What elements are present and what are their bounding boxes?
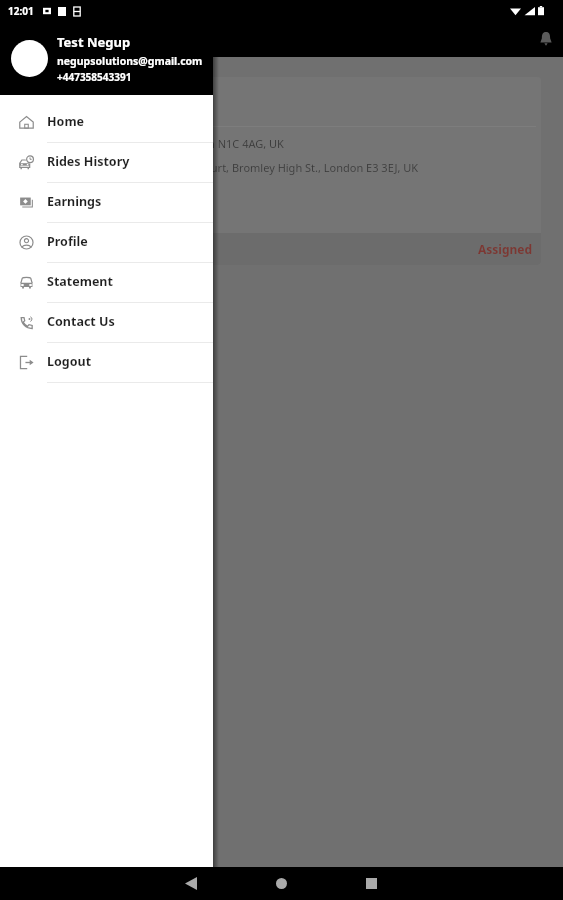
- staticText: Profile: [47, 233, 88, 250]
- button[interactable]: Home: [0, 103, 213, 143]
- button[interactable]: Logout: [0, 343, 213, 383]
- button[interactable]: Rides History: [0, 143, 213, 183]
- button[interactable]: Contact Us: [0, 303, 213, 343]
- staticText: Statement: [47, 273, 113, 290]
- staticText: Test Negup: [57, 33, 131, 51]
- staticText: Earnings: [47, 193, 102, 210]
- button[interactable]: Pancras Road, Kings Cross, London N1C 4A…: [22, 77, 541, 265]
- staticText: Rides History: [47, 153, 130, 170]
- button[interactable]: Recent apps: [354, 867, 388, 900]
- staticText: 12:01: [8, 4, 34, 18]
- staticText: Pancras Road, Kings Cross, London N1C 4A…: [34, 136, 284, 151]
- button[interactable]: Statement: [0, 263, 213, 303]
- staticText: negupsolutions@gmail.com: [57, 54, 203, 68]
- staticText: Logout: [47, 353, 92, 370]
- button[interactable]: Earnings: [0, 183, 213, 223]
- staticText: Flat 9, Dorset House, 214 Hazel Court, B…: [34, 160, 419, 175]
- staticText: Home: [47, 113, 85, 130]
- button[interactable]: Notifications: [532, 25, 560, 53]
- staticText: Assigned: [478, 241, 533, 257]
- button[interactable]: Profile: [0, 223, 213, 263]
- button[interactable]: Back: [174, 867, 208, 900]
- staticText: +447358543391: [57, 70, 132, 84]
- staticText: Contact Us: [47, 313, 115, 330]
- button[interactable]: Home: [264, 867, 298, 900]
